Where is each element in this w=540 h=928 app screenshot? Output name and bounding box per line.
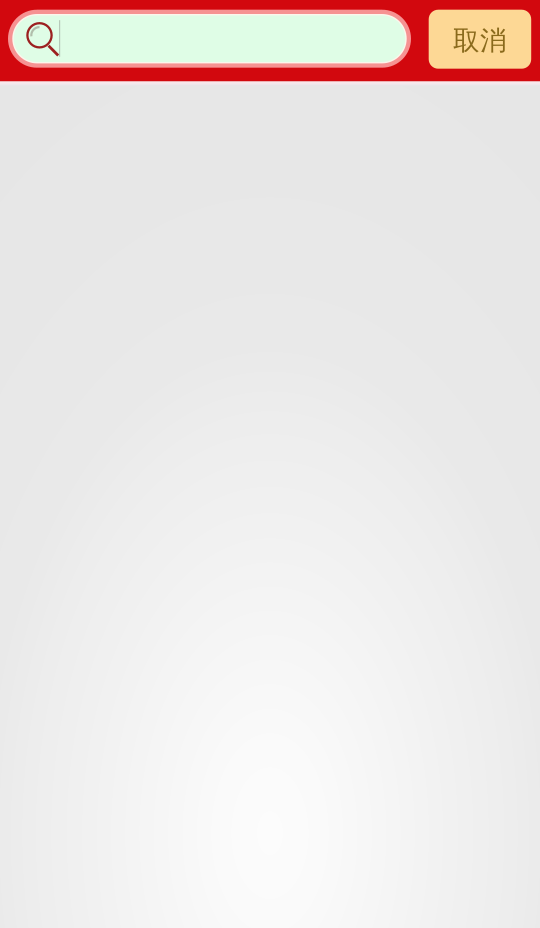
button[interactable]: 取消 xyxy=(429,10,531,69)
staticText: 取消 xyxy=(453,24,507,57)
button[interactable]: Search xyxy=(8,10,411,68)
